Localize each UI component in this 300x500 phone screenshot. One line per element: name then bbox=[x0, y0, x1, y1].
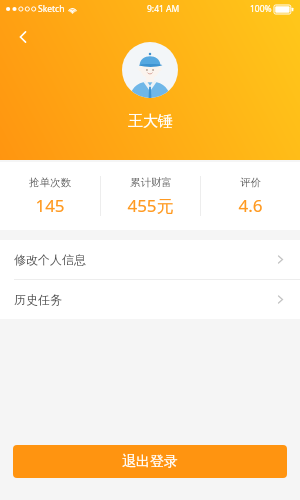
staticText: 455元 bbox=[127, 194, 174, 217]
staticText: 9:41 AM bbox=[147, 3, 180, 15]
staticText: 抢单次数 bbox=[29, 176, 71, 189]
staticText: 累计财富 bbox=[130, 176, 172, 189]
staticText: 145 bbox=[35, 194, 65, 217]
staticText: 100% bbox=[250, 3, 272, 15]
staticText: Sketch bbox=[38, 3, 65, 15]
button[interactable]: 退出登录 bbox=[13, 445, 287, 478]
button[interactable]: 历史任务 bbox=[0, 280, 300, 319]
button[interactable]: Back bbox=[6, 20, 40, 54]
staticText: 修改个人信息 bbox=[14, 252, 86, 267]
staticText: 评价 bbox=[240, 176, 261, 189]
staticText: 王大锤 bbox=[128, 112, 173, 131]
staticText: 历史任务 bbox=[14, 292, 62, 307]
button[interactable]: 修改个人信息 bbox=[0, 240, 300, 279]
staticText: 退出登录 bbox=[122, 453, 178, 471]
staticText: 4.6 bbox=[238, 194, 263, 217]
